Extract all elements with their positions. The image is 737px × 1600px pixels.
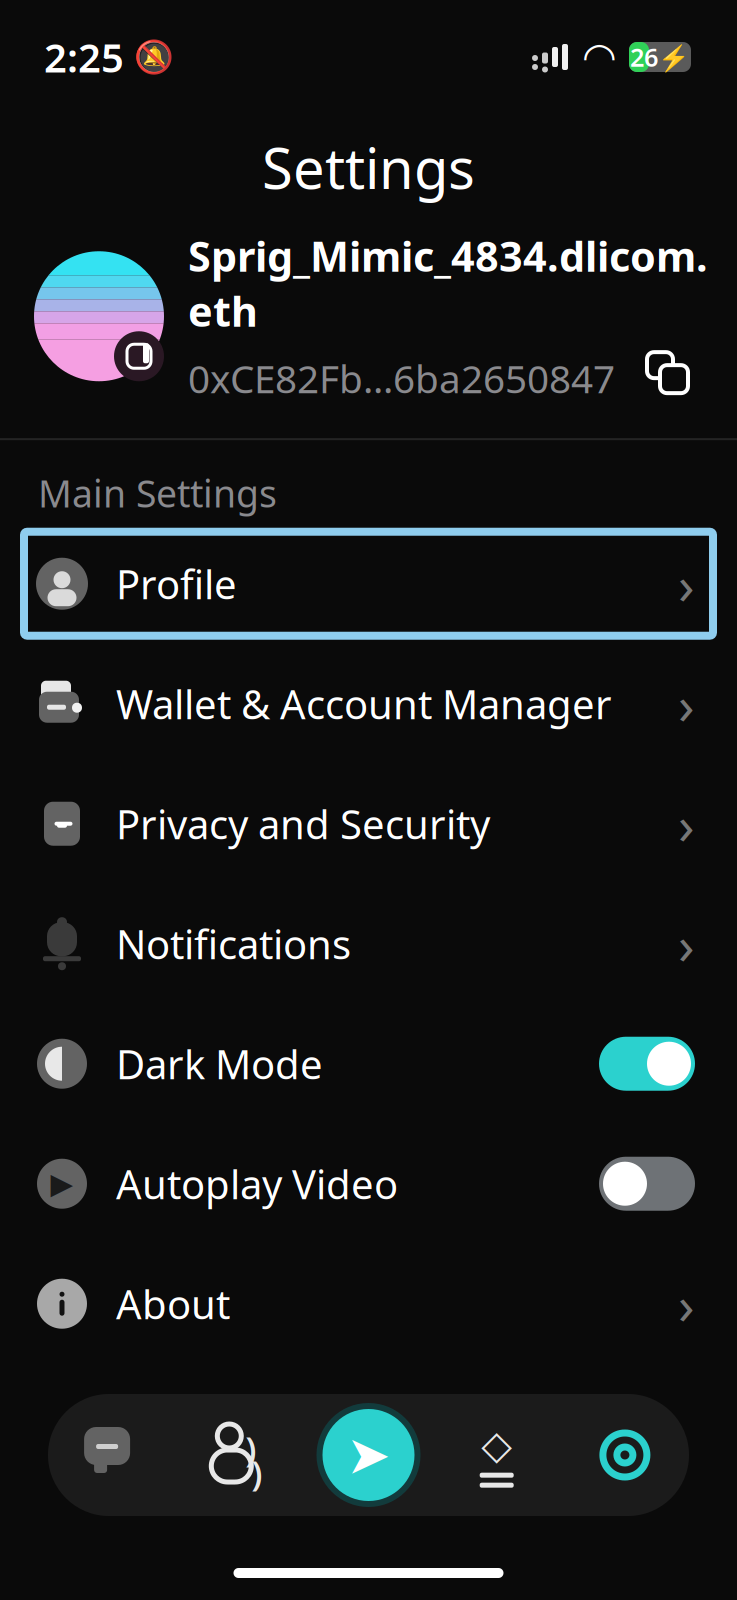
staticText: › xyxy=(678,908,695,979)
staticText: 2:25 xyxy=(44,30,124,83)
staticText: Dark Mode xyxy=(116,1037,323,1090)
staticText: › xyxy=(678,1268,695,1339)
button[interactable]: Wallet & Account Manager xyxy=(0,652,737,756)
staticText: Profile xyxy=(116,557,237,610)
staticText: Notifications xyxy=(116,917,351,970)
button[interactable]: Copy address xyxy=(647,352,713,404)
staticText: Autoplay Video xyxy=(116,1157,398,1210)
staticText: About xyxy=(116,1277,230,1330)
staticText: › xyxy=(678,668,695,739)
staticText: ) xyxy=(245,1426,256,1472)
staticText: 0xCE82Fb...6ba2650847 xyxy=(188,352,615,404)
button[interactable]: Create xyxy=(304,1403,433,1507)
staticText: Privacy and Security xyxy=(116,797,490,850)
button[interactable]: Messages xyxy=(48,1427,176,1483)
staticText: ◇ xyxy=(481,1422,512,1468)
staticText: Wallet & Account Manager xyxy=(116,677,612,730)
button[interactable]: Settings xyxy=(561,1426,689,1484)
button[interactable]: Contacts xyxy=(176,1424,304,1486)
staticText: 26⚡ xyxy=(630,40,690,74)
button[interactable]: Dark Mode xyxy=(0,1012,737,1116)
staticText: Settings xyxy=(262,130,475,204)
staticText: Sprig_Mimic_4834.dlicom.eth xyxy=(188,228,708,338)
button[interactable]: About xyxy=(0,1252,737,1356)
staticText: ▶ xyxy=(50,1167,73,1200)
staticText: ➤ xyxy=(346,1425,391,1485)
button[interactable]: Privacy and Security xyxy=(0,772,737,876)
staticText: › xyxy=(678,788,695,859)
button[interactable]: Notifications xyxy=(0,892,737,996)
staticText: 🔕 xyxy=(134,39,174,75)
button[interactable]: Profile xyxy=(0,532,737,636)
button[interactable]: Layers xyxy=(433,1425,561,1485)
staticText: ) xyxy=(251,1450,262,1496)
staticText: › xyxy=(678,548,695,619)
staticText: ◠ xyxy=(584,34,615,80)
button[interactable]: ▶ xyxy=(0,1132,737,1236)
staticText: Main Settings xyxy=(38,468,277,518)
